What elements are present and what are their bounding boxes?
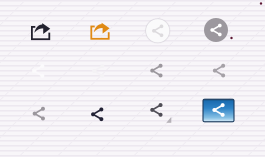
button[interactable]: Share, blue button xyxy=(203,99,234,122)
button[interactable]: Share, light grey xyxy=(213,64,225,77)
button[interactable]: Share xyxy=(31,23,50,40)
button[interactable]: Share, white xyxy=(32,64,44,78)
button[interactable]: Share, orange xyxy=(90,23,110,40)
button[interactable]: Share, dark xyxy=(91,107,103,121)
button[interactable]: Share, medium grey xyxy=(33,107,45,120)
button[interactable]: Share, light circle xyxy=(145,18,171,44)
button[interactable]: Share, charcoal xyxy=(150,103,162,117)
button[interactable]: Share, faint xyxy=(92,64,104,78)
button[interactable]: Share, grey xyxy=(150,64,162,77)
button[interactable]: Share, grey circle xyxy=(203,17,228,42)
